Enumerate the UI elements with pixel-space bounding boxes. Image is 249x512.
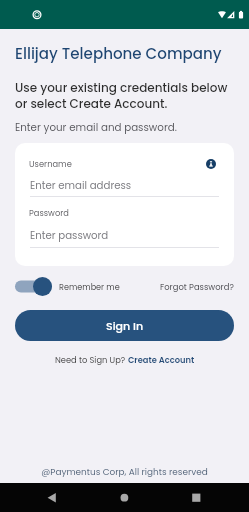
staticText: Need to Sign Up? <box>55 354 128 366</box>
staticText: Ellijay Telephone Company <box>15 43 222 64</box>
button[interactable]: Remember me <box>15 277 120 296</box>
staticText: Enter email address <box>30 178 132 192</box>
button[interactable]: Sign In <box>15 310 234 341</box>
button[interactable]: Forgot Password? <box>160 281 234 293</box>
button[interactable]: Information <box>206 159 216 169</box>
staticText: Enter password <box>30 228 109 242</box>
staticText: Sign In <box>106 318 144 333</box>
staticText: @Paymentus Corp, All rights reserved <box>0 466 249 478</box>
staticText: Enter your email and password. <box>15 120 177 134</box>
staticText: Remember me <box>59 281 120 292</box>
button[interactable]: Create Account <box>128 354 195 366</box>
staticText: Password <box>29 207 69 219</box>
staticText: Username <box>29 158 72 170</box>
staticText: Use your existing credentials below or s… <box>15 79 228 112</box>
